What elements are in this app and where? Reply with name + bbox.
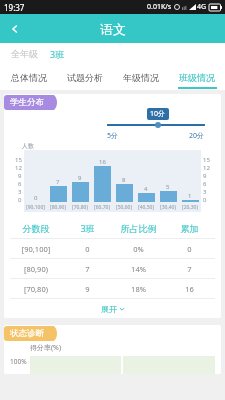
staticText: [70,80) <box>10 284 62 294</box>
staticText: 3 <box>203 188 207 196</box>
staticText: 3班 <box>62 222 113 234</box>
staticText: [40,50) <box>135 204 157 211</box>
button[interactable]: [70,80) <box>10 279 215 298</box>
staticText: 4 <box>144 185 148 193</box>
staticText: 19:37 <box>4 2 25 13</box>
staticText: 100% <box>10 357 27 366</box>
button[interactable]: 总体情况 <box>0 64 57 90</box>
staticText: 班级情况 <box>179 72 215 83</box>
staticText: 年级情况 <box>123 72 159 83</box>
staticText: 状态诊断 <box>10 328 44 339</box>
staticText: 6 <box>203 180 207 188</box>
staticText: 全年级 <box>11 48 38 59</box>
button[interactable]: 班级情况 <box>169 64 225 90</box>
staticText: 1 <box>188 192 192 200</box>
staticText: 试题分析 <box>67 72 103 83</box>
staticText: 3班 <box>50 48 65 60</box>
button[interactable]: 3班 <box>44 48 71 60</box>
staticText: 12 <box>203 164 210 172</box>
staticText: 0.01K/s <box>147 2 172 12</box>
staticText: [90,100] <box>10 244 62 254</box>
staticText: 总体情况 <box>11 72 47 83</box>
button[interactable]: [90,100] <box>10 239 215 258</box>
staticText: [70,80) <box>69 204 91 211</box>
staticText: 16 <box>99 158 106 166</box>
button[interactable]: 展开 <box>4 299 221 318</box>
staticText: 5 <box>166 183 170 191</box>
staticText: [80,90) <box>47 204 69 211</box>
button[interactable]: Back <box>0 14 30 43</box>
staticText: 5分 <box>107 131 119 141</box>
staticText: 9 <box>18 172 22 180</box>
staticText: 0 <box>18 196 22 202</box>
staticText: 0 <box>203 196 207 202</box>
staticText: 4G <box>197 2 207 12</box>
button[interactable]: 试题分析 <box>57 64 113 90</box>
staticText: 18% <box>113 284 164 294</box>
staticText: 16 <box>164 284 215 294</box>
button[interactable]: 全年级 <box>0 48 44 59</box>
staticText: 12 <box>15 164 22 172</box>
staticText: [80,90) <box>10 264 62 274</box>
staticText: 15 <box>203 156 210 164</box>
staticText: 14% <box>113 264 164 274</box>
staticText: 人数 <box>22 142 34 150</box>
staticText: [50,60) <box>113 204 135 211</box>
button[interactable] <box>155 122 161 128</box>
staticText: 10分 <box>150 109 166 119</box>
staticText: 3 <box>18 188 22 196</box>
staticText: [90,100] <box>24 204 47 211</box>
staticText: 语文 <box>100 21 126 37</box>
staticText: 7 <box>56 178 60 186</box>
staticText: [30,40) <box>157 204 179 211</box>
staticText: [20,30) <box>179 204 201 211</box>
staticText: 6 <box>18 180 22 188</box>
staticText: 0% <box>113 244 164 254</box>
staticText: 9 <box>203 172 207 180</box>
staticText: 分数段 <box>10 223 62 234</box>
staticText: 0 <box>164 244 215 254</box>
staticText: 8 <box>122 176 126 184</box>
staticText: 学生分布 <box>10 97 44 108</box>
staticText: 20分 <box>189 131 205 141</box>
staticText: 7 <box>164 264 215 274</box>
button[interactable]: [80,90) <box>10 259 215 278</box>
button[interactable]: 年级情况 <box>113 64 169 90</box>
staticText: 0 <box>62 244 113 254</box>
staticText: 7 <box>62 264 113 274</box>
staticText: 展开 <box>101 304 117 314</box>
staticText: 0 <box>34 194 38 202</box>
staticText: 所占比例 <box>113 223 164 234</box>
staticText: 15 <box>15 156 22 164</box>
staticText: 得分率(%) <box>30 343 62 353</box>
staticText: 累加 <box>164 223 215 234</box>
staticText: 9 <box>62 284 113 294</box>
staticText: [60,70) <box>91 204 113 211</box>
staticText: 9 <box>78 174 82 182</box>
